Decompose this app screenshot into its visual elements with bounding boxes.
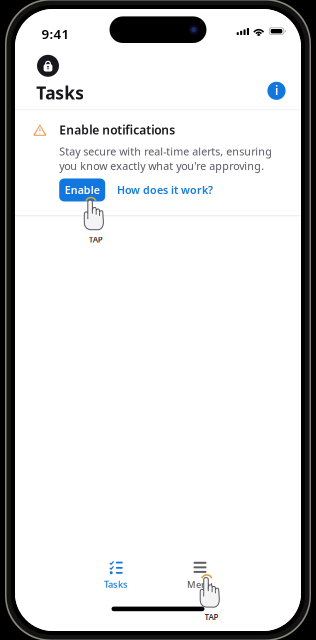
staticText: How does it work? <box>117 183 213 197</box>
button[interactable]: Menu <box>158 562 242 595</box>
staticText: TAP <box>205 611 219 622</box>
staticText: Tasks <box>36 81 84 104</box>
staticText: Enable notifications <box>59 122 175 138</box>
button[interactable]: How does it work? <box>111 178 219 201</box>
staticText: you know exactly what you're approving. <box>59 159 264 173</box>
button[interactable]: Tasks <box>74 562 158 595</box>
staticText: TAP <box>89 234 103 245</box>
button[interactable]: Information <box>261 76 291 106</box>
staticText: Menu <box>187 578 213 591</box>
staticText: 9:41 <box>42 25 70 43</box>
staticText: i <box>275 82 278 98</box>
staticText: Enable <box>65 183 100 197</box>
button[interactable]: Enable <box>59 178 105 201</box>
staticText: Stay secure with real-time alerts, ensur… <box>59 144 272 158</box>
staticText: Tasks <box>104 578 128 590</box>
